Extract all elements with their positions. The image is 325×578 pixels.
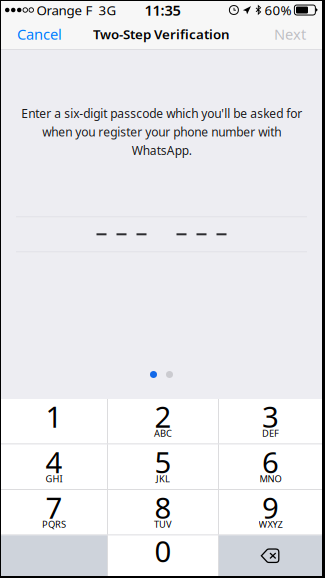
staticText: 3 (262, 397, 279, 436)
staticText: MNO (259, 473, 281, 485)
staticText: 4 (45, 442, 62, 481)
button[interactable]: 9 (219, 490, 322, 534)
staticText: Two-Step Verification (93, 25, 230, 43)
staticText: 2 (154, 397, 171, 436)
button[interactable]: 0 (108, 535, 218, 576)
button[interactable]: 4 (1, 444, 107, 489)
staticText: Next (274, 24, 306, 44)
staticText: 1 (45, 397, 62, 436)
button[interactable]: 5 (108, 444, 218, 489)
staticText: GHI (45, 473, 62, 485)
button[interactable]: 8 (108, 490, 218, 534)
staticText: DEF (262, 427, 279, 439)
staticText: 7 (45, 488, 62, 527)
staticText: 5 (154, 442, 171, 481)
button[interactable]: Next (263, 19, 317, 49)
staticText: 11:35 (144, 0, 180, 20)
button[interactable]: 6 (219, 444, 322, 489)
staticText: WXYZ (258, 518, 282, 530)
staticText: 0 (154, 531, 171, 570)
button[interactable]: 3 (219, 399, 322, 443)
staticText: ABC (154, 427, 172, 439)
staticText: Enter a six-digit passcode which you'll … (21, 105, 302, 158)
staticText: 9 (262, 488, 279, 527)
button[interactable]: 2 (108, 399, 218, 443)
button[interactable]: 7 (1, 490, 107, 534)
staticText: Cancel (17, 24, 62, 44)
staticText: TUV (154, 518, 172, 530)
button[interactable]: Delete (219, 535, 322, 576)
staticText: PQRS (42, 518, 66, 530)
staticText: 8 (154, 488, 171, 527)
staticText: JKL (156, 473, 170, 485)
button[interactable]: 1 (1, 399, 107, 443)
staticText: 3G (98, 1, 116, 19)
staticText: 60% (264, 1, 291, 19)
button[interactable]: Cancel (6, 19, 73, 49)
staticText: 6 (262, 442, 279, 481)
staticText: Orange F (36, 1, 92, 19)
